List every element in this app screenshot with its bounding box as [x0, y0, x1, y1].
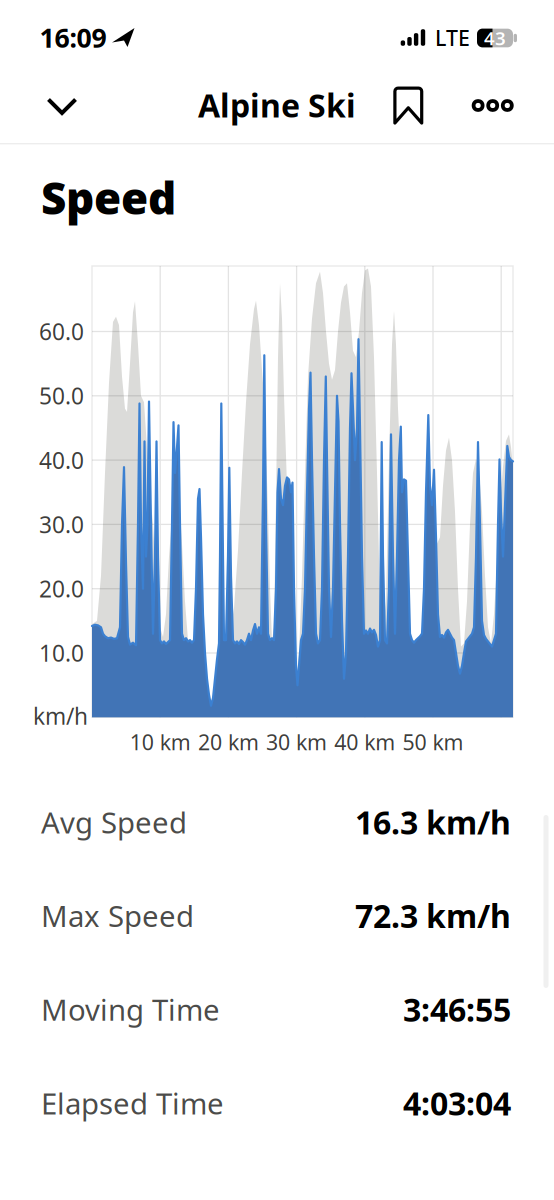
staticText: 30 km: [266, 728, 327, 756]
staticText: Max Speed: [41, 896, 194, 935]
staticText: 10 km: [130, 728, 191, 756]
staticText: 20.0: [39, 574, 84, 604]
staticText: 40 km: [334, 728, 395, 756]
staticText: 16:09: [39, 20, 106, 55]
staticText: 3:46:55: [403, 988, 511, 1031]
staticText: 72.3 km/h: [355, 894, 511, 937]
staticText: 10.0: [39, 638, 84, 668]
staticText: 20 km: [198, 728, 259, 756]
staticText: 40.0: [39, 445, 84, 475]
staticText: 30.0: [39, 509, 84, 539]
button[interactable]: Close: [46, 97, 77, 115]
staticText: 50 km: [402, 728, 463, 756]
staticText: Avg Speed: [41, 802, 187, 841]
staticText: 60.0: [39, 316, 84, 346]
staticText: Elapsed Time: [41, 1083, 224, 1122]
button[interactable]: Save: [393, 86, 423, 124]
staticText: 16.3 km/h: [355, 801, 511, 843]
staticText: Moving Time: [41, 990, 220, 1029]
staticText: Alpine Ski: [198, 84, 356, 126]
staticText: LTE: [435, 24, 470, 52]
staticText: 50.0: [39, 381, 84, 411]
button[interactable]: More options: [471, 99, 514, 112]
staticText: Speed: [41, 168, 176, 227]
staticText: 4:03:04: [403, 1082, 511, 1124]
staticText: 43: [484, 26, 506, 50]
staticText: km/h: [33, 701, 88, 731]
